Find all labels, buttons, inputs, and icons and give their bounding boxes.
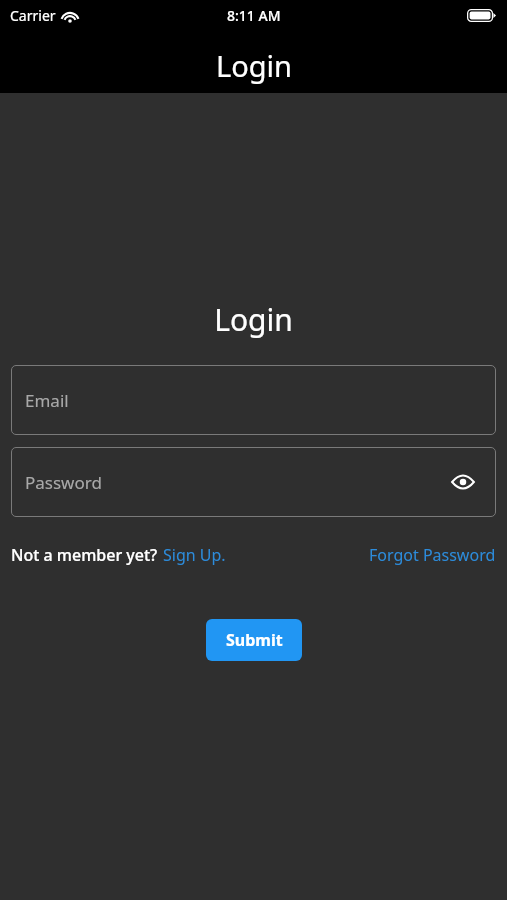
button[interactable]: Show password — [448, 467, 478, 497]
button[interactable]: Password — [11, 447, 496, 517]
button[interactable]: Sign Up. — [163, 544, 226, 566]
staticText: Submit — [226, 629, 283, 651]
staticText: Login — [0, 299, 507, 340]
staticText: 8:11 AM — [227, 6, 281, 25]
staticText: Email — [25, 389, 69, 412]
staticText: Login — [216, 46, 292, 85]
button[interactable]: Email — [11, 365, 496, 435]
staticText: Forgot Password — [369, 544, 496, 566]
staticText: Carrier — [10, 6, 56, 25]
button[interactable]: Submit — [206, 619, 302, 661]
staticText: Sign Up. — [163, 544, 226, 566]
staticText: Not a member yet? — [11, 544, 158, 566]
staticText: Password — [25, 471, 102, 494]
button[interactable]: Forgot Password — [369, 544, 496, 566]
